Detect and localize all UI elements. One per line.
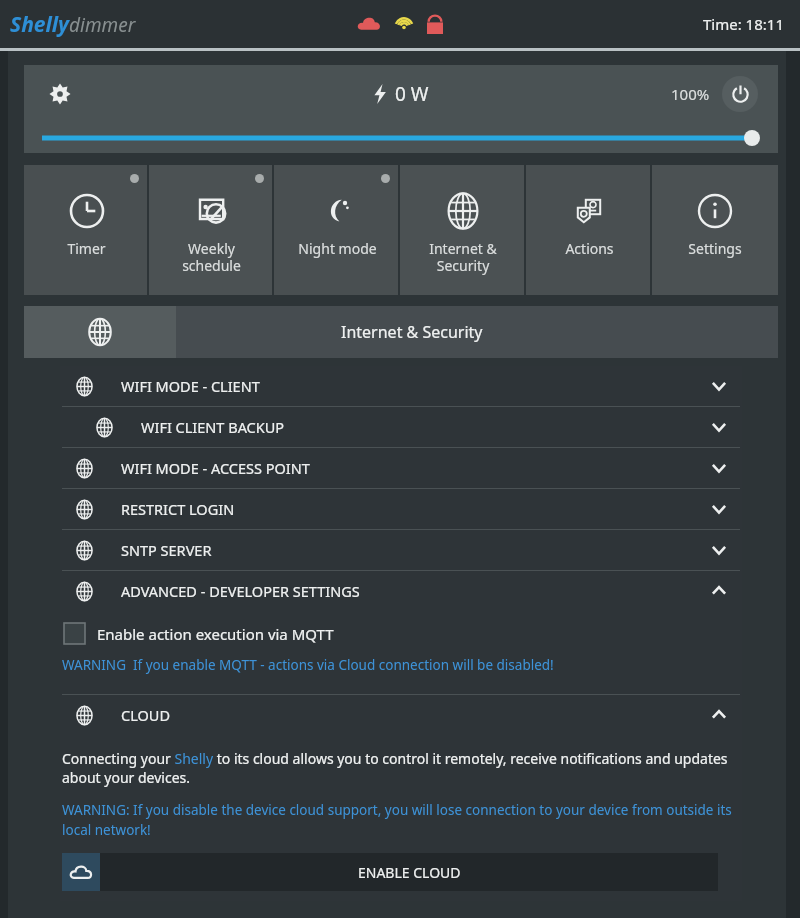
staticText: Actions	[565, 239, 614, 258]
staticText: ENABLE CLOUD	[358, 863, 461, 882]
button[interactable]: SNTP SERVER	[60, 530, 742, 570]
staticText: WIFI CLIENT BACKUP	[141, 417, 285, 437]
staticText: 100%	[671, 84, 710, 104]
button[interactable]: Night mode	[274, 165, 400, 295]
button[interactable]: Brightness slider	[42, 123, 760, 153]
staticText: Weekly schedule	[182, 239, 241, 275]
button[interactable]: WIFI CLIENT BACKUP	[80, 407, 742, 447]
staticText: WARNING If you enable MQTT - actions via…	[62, 656, 554, 674]
staticText: WARNING: If you disable the device cloud…	[62, 801, 734, 839]
button[interactable]: Actions	[526, 165, 652, 295]
staticText: CLOUD	[121, 705, 170, 725]
button[interactable]: Power toggle	[722, 76, 758, 112]
button[interactable]: WIFI MODE - ACCESS POINT	[60, 448, 742, 488]
staticText: SNTP SERVER	[121, 540, 212, 560]
other: WiFi status	[395, 16, 413, 32]
button[interactable]: Internet & Security	[400, 165, 526, 295]
button[interactable]: Settings	[652, 165, 778, 295]
staticText: Timer	[67, 239, 106, 258]
button[interactable]: WIFI MODE - CLIENT	[60, 366, 742, 406]
staticText: Night mode	[298, 239, 377, 258]
staticText: Shelly	[10, 10, 69, 39]
staticText: 0 W	[395, 81, 429, 107]
staticText: dimmer	[69, 12, 136, 38]
button[interactable]: RESTRICT LOGIN	[60, 489, 742, 529]
staticText: Settings	[688, 239, 742, 258]
staticText: WIFI MODE - ACCESS POINT	[121, 458, 310, 478]
button[interactable]: Weekly schedule	[149, 165, 274, 295]
other: Cloud status	[357, 15, 381, 33]
staticText: WIFI MODE - CLIENT	[121, 376, 260, 396]
staticText: Enable action execution via MQTT	[97, 624, 334, 644]
staticText: Internet & Security	[429, 239, 497, 275]
button[interactable]: ADVANCED - DEVELOPER SETTINGS	[60, 571, 742, 611]
staticText: RESTRICT LOGIN	[121, 499, 235, 519]
staticText: ADVANCED - DEVELOPER SETTINGS	[121, 581, 360, 601]
button[interactable]: ENABLE CLOUD	[62, 853, 718, 891]
other: Security status	[427, 14, 443, 34]
staticText: Time: 18:11	[703, 14, 784, 34]
button[interactable]: CLOUD	[60, 695, 742, 735]
button[interactable]: Enable action execution via MQTT	[64, 623, 742, 644]
staticText: Internet & Security	[341, 321, 483, 343]
button[interactable]: Internet & Security	[24, 306, 778, 358]
button[interactable]: Device settings	[42, 76, 78, 112]
button[interactable]: Timer	[24, 165, 149, 295]
staticText: Connecting your Shelly to its cloud allo…	[62, 749, 734, 787]
